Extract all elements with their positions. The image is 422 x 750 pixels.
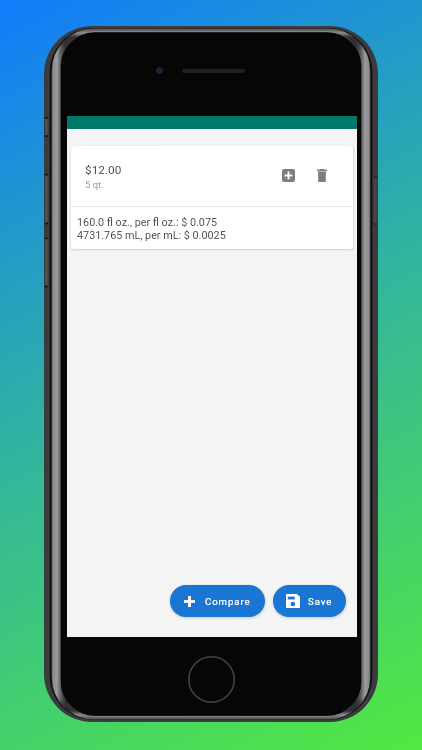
staticText: 4731.765 mL, per mL: $ 0.0025 [77, 229, 226, 242]
staticText: 160.0 fl oz., per fl oz.: $ 0.075 [77, 216, 218, 229]
button[interactable]: Compare [170, 585, 265, 617]
staticText: Compare [205, 596, 251, 607]
staticText: Save [308, 596, 333, 607]
button[interactable]: Add item [273, 161, 303, 191]
button[interactable]: Delete item [307, 161, 337, 191]
staticText: $12.00 [85, 163, 122, 177]
staticText: 5 qt. [85, 179, 104, 190]
button[interactable]: Save [273, 585, 346, 617]
